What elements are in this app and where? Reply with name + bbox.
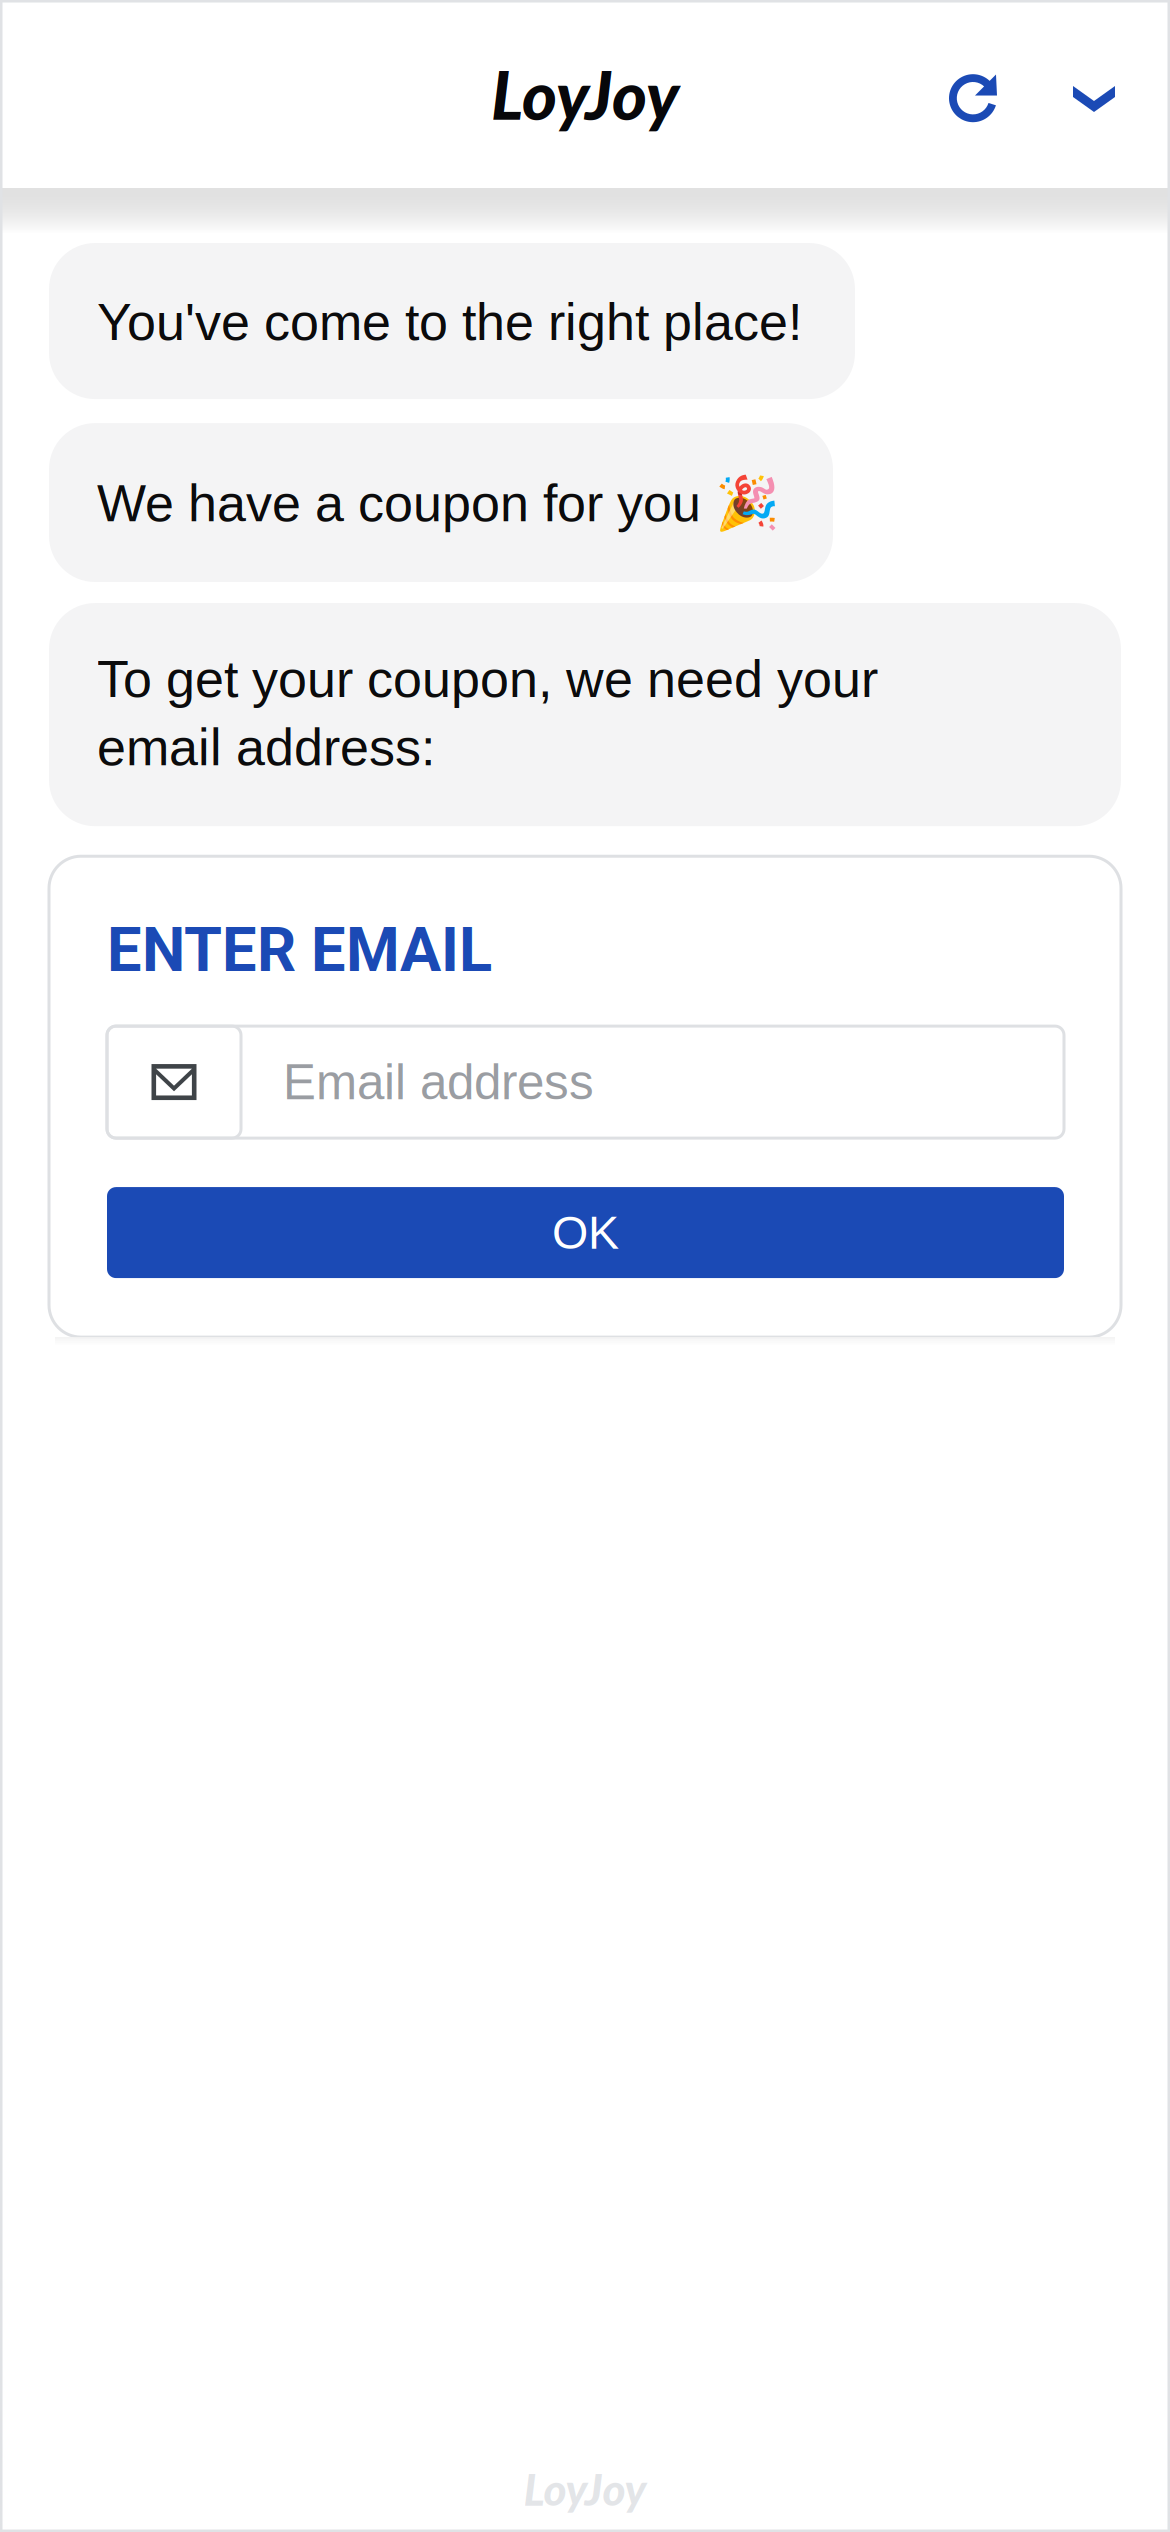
staticText: To get your coupon, we need your email a…	[97, 650, 878, 776]
staticText: ENTER EMAIL	[107, 914, 492, 986]
staticText: You've come to the right place!	[97, 293, 802, 351]
staticText: LoyJoy	[491, 54, 679, 134]
staticText: OK	[552, 1206, 619, 1259]
staticText: LoyJoy	[523, 2462, 646, 2515]
button[interactable]: Email address	[107, 1026, 1064, 1138]
button[interactable]: Minimise chat	[1045, 38, 1142, 150]
button[interactable]: OK	[107, 1187, 1064, 1278]
staticText: Email address	[283, 1054, 594, 1110]
button[interactable]: Reload	[925, 37, 1017, 151]
staticText: We have a coupon for you 🎉	[97, 473, 780, 534]
